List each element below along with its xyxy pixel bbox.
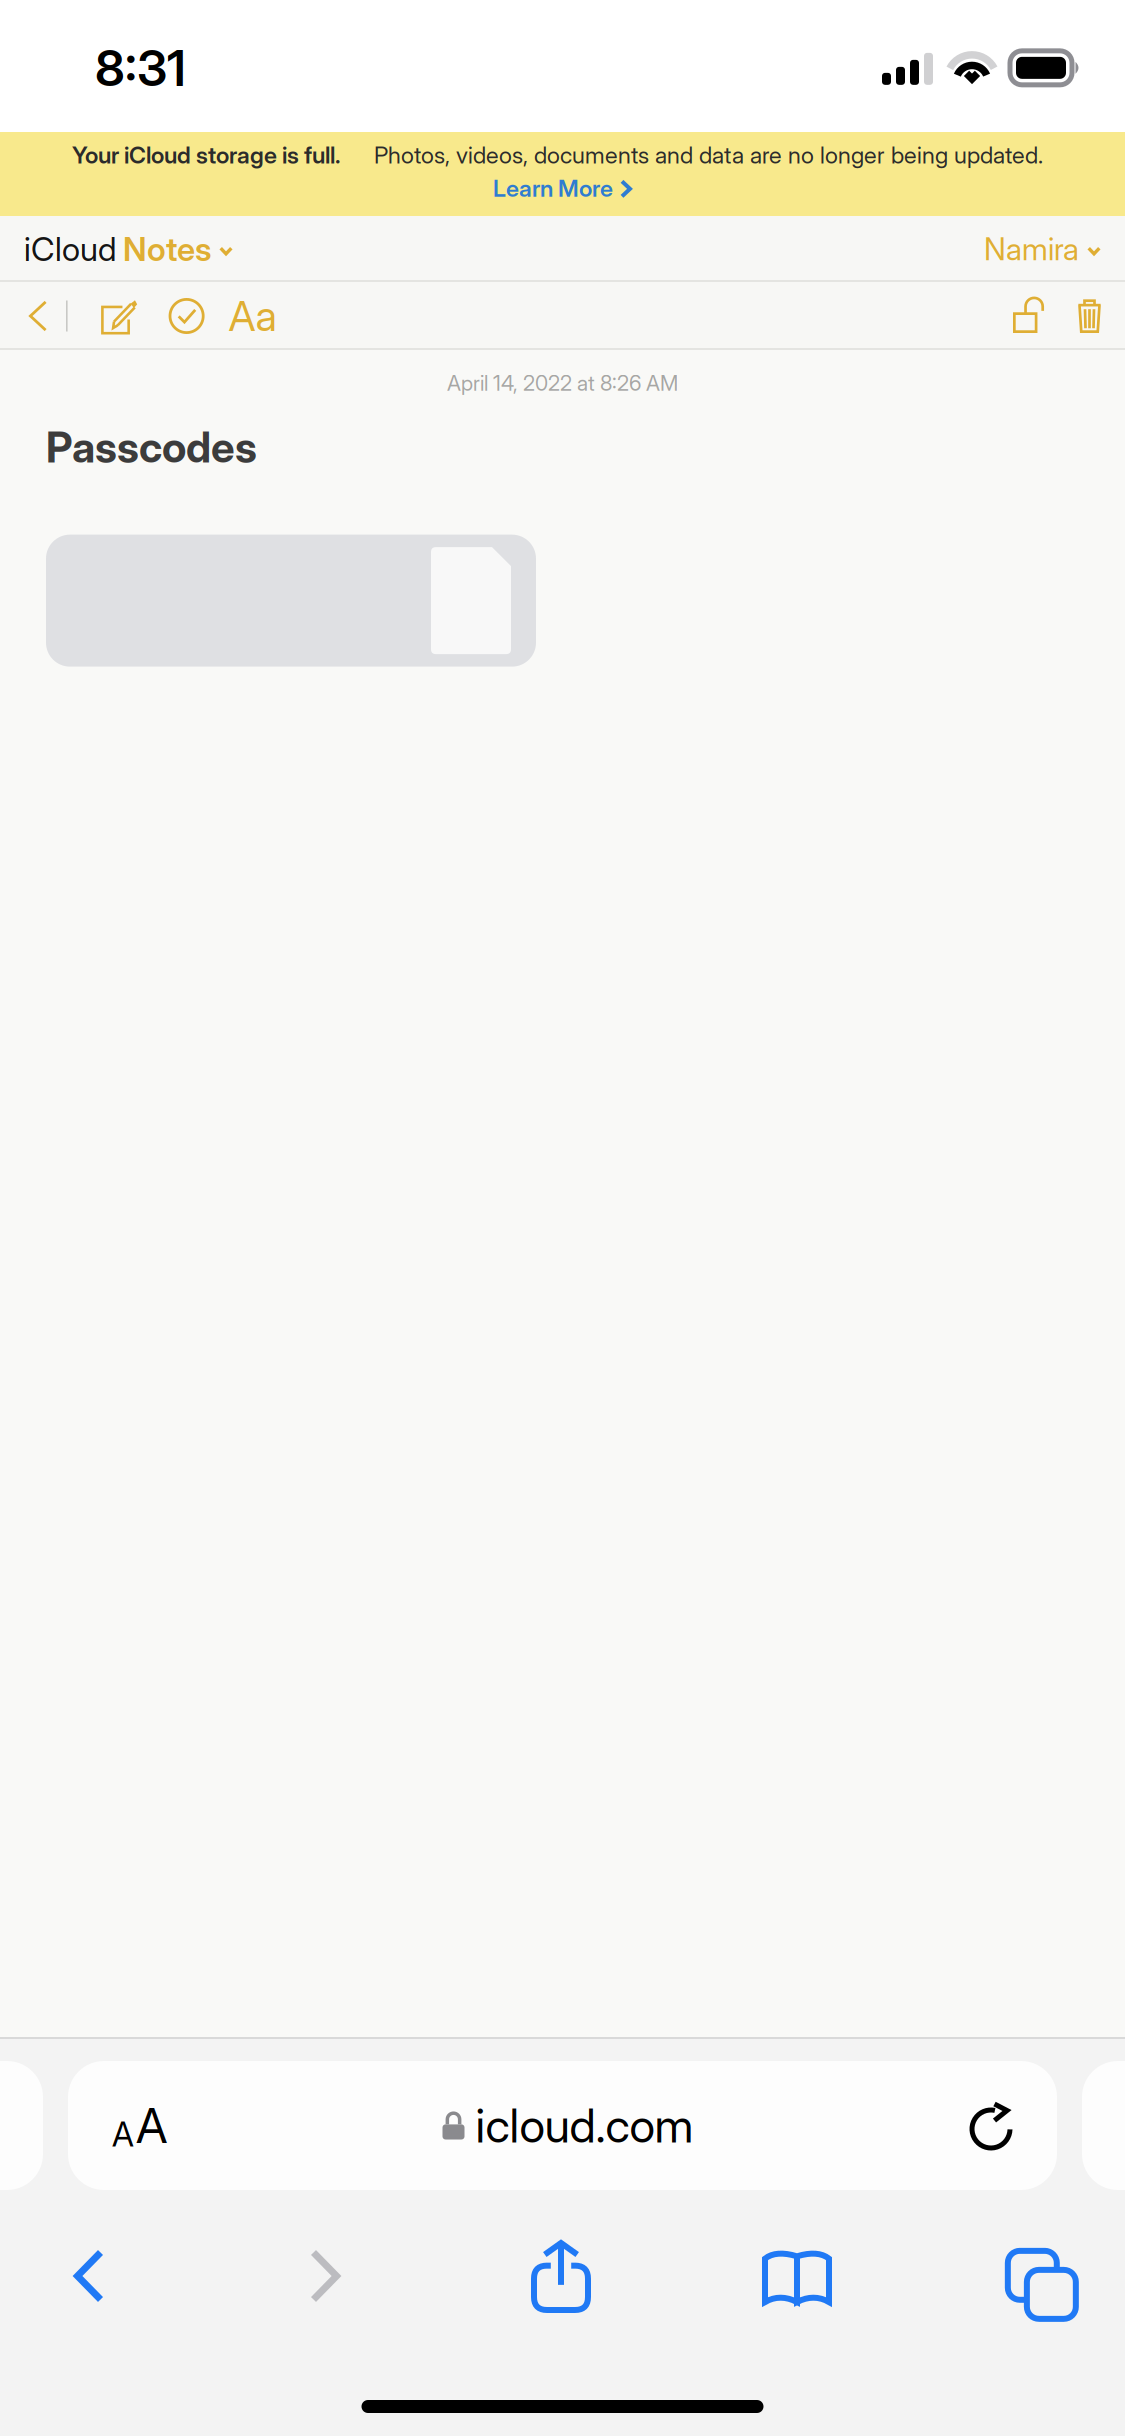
staticText: Passcodes [46, 422, 257, 473]
button[interactable]: Bookmarks [709, 2230, 885, 2322]
button[interactable]: Format [226, 282, 280, 350]
button[interactable]: Lock note [1002, 282, 1057, 350]
staticText: A [112, 2114, 134, 2154]
staticText: Namira [984, 230, 1079, 267]
staticText: April 14, 2022 at 8:26 AM [447, 370, 678, 396]
button[interactable]: Back [1, 2230, 177, 2322]
button[interactable]: Forward [237, 2230, 413, 2322]
button[interactable]: Tabs [945, 2230, 1121, 2322]
button[interactable]: Share [473, 2230, 649, 2322]
staticText: Photos, videos, documents and data are n… [374, 141, 1043, 169]
staticText: Aa [229, 291, 277, 341]
staticText: Your iCloud storage is full. [72, 141, 341, 169]
button[interactable]: A [68, 2061, 1057, 2190]
staticText: A [136, 2096, 167, 2155]
button[interactable]: Namira [984, 216, 1101, 282]
button[interactable]: Checklist [160, 282, 214, 350]
button[interactable]: New note [93, 282, 147, 350]
button[interactable]: iCloud [24, 216, 233, 282]
staticText: icloud.com [475, 2097, 693, 2153]
staticText: Notes [116, 229, 211, 269]
button[interactable]: Delete note [1066, 282, 1113, 350]
staticText: iCloud [24, 229, 116, 269]
staticText: Learn More [493, 174, 613, 202]
button[interactable]: Your iCloud storage is full. [0, 132, 1125, 216]
button[interactable]: Back [10, 282, 66, 350]
staticText: 8:31 [95, 38, 186, 98]
